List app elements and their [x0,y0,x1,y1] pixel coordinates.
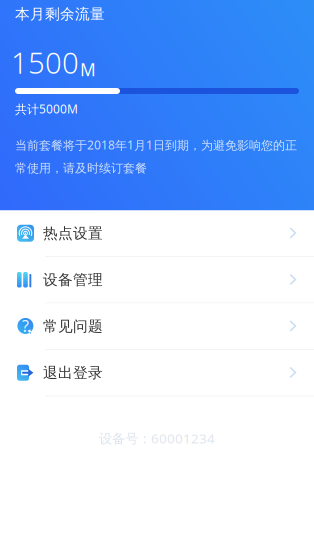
staticText: ? [22,315,29,336]
button[interactable]: ? [0,303,314,350]
button[interactable]: 热点设置 [0,210,314,257]
staticText: 1500 [11,43,79,82]
staticText: M [80,58,96,81]
button[interactable]: 退出登录 [0,350,314,396]
staticText: 常见问题 [43,317,103,335]
staticText: 共计5000M [15,101,78,117]
staticText: 本月剩余流量 [15,5,105,23]
staticText: 退出登录 [43,364,103,382]
button[interactable]: 设备管理 [0,257,314,303]
staticText: 设备号：60001234 [99,429,215,447]
staticText: 热点设置 [43,224,103,242]
staticText: 当前套餐将于2018年1月1日到期，为避免影响您的正常使用，请及时续订套餐 [15,137,297,176]
staticText: 设备管理 [43,271,103,289]
